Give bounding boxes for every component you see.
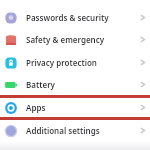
button[interactable]: Apps	[0, 98, 150, 117]
staticText: Battery	[26, 79, 55, 90]
other: Safety & emergency	[138, 35, 147, 44]
other: Passwords & security	[138, 13, 147, 22]
button[interactable]: Privacy protection	[0, 51, 150, 74]
staticText: Passwords & security	[26, 12, 109, 23]
staticText: Privacy protection	[26, 57, 97, 68]
other: Privacy protection	[138, 58, 147, 67]
staticText: Additional settings	[26, 125, 100, 136]
other: Battery	[138, 80, 147, 89]
button[interactable]: Safety & emergency	[0, 28, 150, 51]
other: Apps	[138, 103, 147, 112]
button[interactable]: Battery	[0, 74, 150, 95]
button[interactable]: Additional settings	[0, 120, 150, 141]
staticText: Safety & emergency	[26, 34, 105, 45]
button[interactable]: Passwords & security	[0, 7, 150, 28]
staticText: Apps	[26, 102, 46, 113]
other: Additional settings	[138, 126, 147, 135]
